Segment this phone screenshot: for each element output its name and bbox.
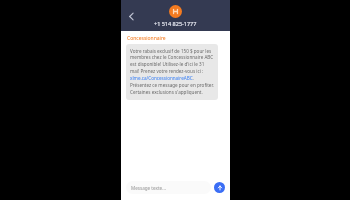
button[interactable]: Message texte... bbox=[126, 181, 211, 194]
button[interactable]: Back bbox=[123, 8, 139, 24]
staticText: Concessionnaire bbox=[127, 35, 166, 42]
staticText: Votre rabais exclusif de 150 $ pour les … bbox=[130, 48, 214, 96]
button[interactable]: Votre rabais exclusif de 150 $ pour les … bbox=[126, 44, 218, 100]
button[interactable]: Contact avatar bbox=[169, 5, 182, 18]
staticText: +1 514 825-1777 bbox=[154, 20, 197, 27]
button[interactable]: Send bbox=[214, 182, 225, 193]
staticText: Message texte... bbox=[131, 185, 166, 191]
